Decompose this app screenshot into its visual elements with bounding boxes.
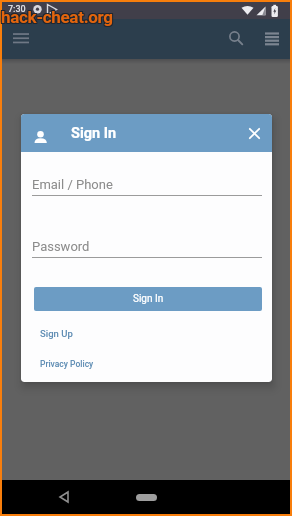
staticText: hack-cheat.org	[0, 7, 112, 27]
staticText: hack-cheat.org	[1, 8, 113, 28]
staticText: Password	[32, 239, 90, 254]
button[interactable]: Sign Up	[33, 322, 80, 345]
staticText: Privacy Policy	[40, 359, 94, 369]
staticText: Sign In	[133, 293, 164, 305]
button[interactable]: Privacy Policy	[33, 353, 101, 375]
staticText: hack-cheat.org	[0, 8, 112, 28]
staticText: hack-cheat.org	[2, 7, 114, 27]
button[interactable]: Sign In	[34, 287, 262, 311]
staticText: 7:30	[8, 4, 26, 15]
staticText: hack-cheat.org	[0, 6, 112, 26]
staticText: hack-cheat.org	[1, 7, 113, 27]
button[interactable]	[240, 119, 268, 147]
button[interactable]	[5, 23, 37, 55]
button[interactable]: Email / Phone	[32, 171, 262, 196]
button[interactable]	[256, 23, 288, 55]
staticText: Sign In	[71, 125, 117, 142]
staticText: hack-cheat.org	[2, 8, 114, 28]
staticText: hack-cheat.org	[2, 6, 114, 26]
button[interactable]: Password	[32, 233, 262, 258]
staticText: hack-cheat.org	[1, 6, 113, 26]
staticText: Email / Phone	[32, 177, 113, 192]
staticText: Sign Up	[40, 328, 73, 339]
button[interactable]	[220, 22, 252, 54]
button[interactable]	[47, 481, 79, 513]
button[interactable]	[133, 490, 159, 504]
